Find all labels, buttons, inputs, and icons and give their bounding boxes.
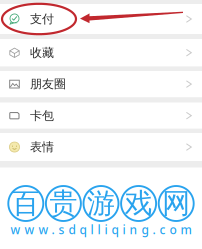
staticText: 朋友圈	[30, 77, 66, 91]
button[interactable]: 朋友圈	[0, 71, 202, 97]
staticText: 百	[12, 186, 40, 221]
staticText: 表情	[30, 140, 54, 154]
button[interactable]: 支付	[0, 4, 202, 34]
staticText: 卡包	[30, 108, 54, 123]
button[interactable]: 表情	[0, 133, 202, 161]
staticText: 收藏	[30, 45, 54, 60]
staticText: 戏	[125, 186, 153, 221]
staticText: 支付	[30, 12, 54, 26]
button[interactable]: 卡包	[0, 103, 202, 129]
staticText: 贵	[49, 186, 77, 221]
staticText: 游	[87, 186, 115, 221]
staticText: 网	[162, 186, 190, 221]
button[interactable]: 收藏	[0, 39, 202, 66]
staticText: www.sdqlliqing.com	[10, 221, 191, 237]
